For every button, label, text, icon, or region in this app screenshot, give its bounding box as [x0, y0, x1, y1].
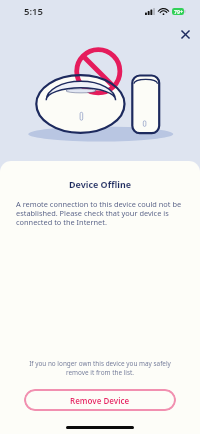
staticText: A remote connection to this device could… — [16, 199, 184, 227]
staticText: Remove Device — [70, 395, 130, 406]
staticText: 79+ — [174, 8, 183, 15]
button[interactable]: Close — [177, 26, 193, 42]
staticText: 5:15 — [24, 5, 43, 18]
staticText: If you no longer own this device you may… — [26, 359, 174, 377]
staticText: Device Offline — [0, 178, 200, 190]
button[interactable]: Remove Device — [24, 389, 176, 411]
